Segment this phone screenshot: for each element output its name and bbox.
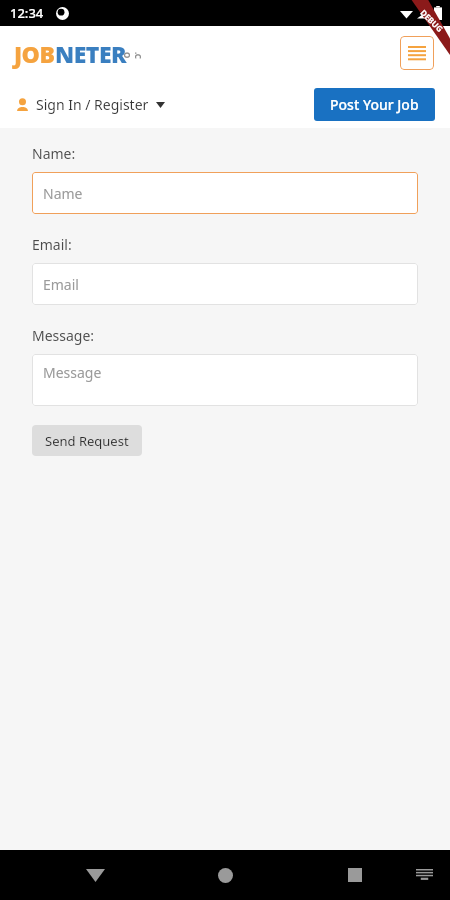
button[interactable]: Home — [202, 852, 248, 898]
button[interactable]: Recent apps — [332, 852, 378, 898]
staticText: Email — [43, 275, 79, 294]
staticText: .COM — [122, 52, 144, 64]
staticText: Name — [43, 184, 83, 203]
staticText: Message: — [32, 326, 95, 345]
button[interactable]: Switch keyboard — [406, 857, 442, 893]
button[interactable]: Open menu — [400, 36, 434, 70]
button[interactable]: Sign In / Register — [12, 91, 169, 118]
staticText: Name: — [32, 144, 76, 163]
staticText: Post Your Job — [330, 95, 419, 114]
button[interactable]: Post Your Job — [314, 88, 435, 121]
button[interactable]: Name — [32, 172, 418, 214]
staticText: 12:34 — [10, 4, 44, 22]
button[interactable]: Email — [32, 263, 418, 305]
staticText: Send Request — [45, 432, 129, 450]
button[interactable]: Back — [72, 852, 118, 898]
button[interactable]: Message — [32, 354, 418, 406]
staticText: Sign In / Register — [36, 95, 149, 114]
staticText: JOB — [14, 38, 55, 69]
staticText: Message — [43, 363, 102, 382]
button[interactable]: Send Request — [32, 425, 142, 456]
staticText: NETER — [55, 38, 127, 69]
staticText: Email: — [32, 235, 72, 254]
staticText: DEBUG — [418, 7, 446, 34]
